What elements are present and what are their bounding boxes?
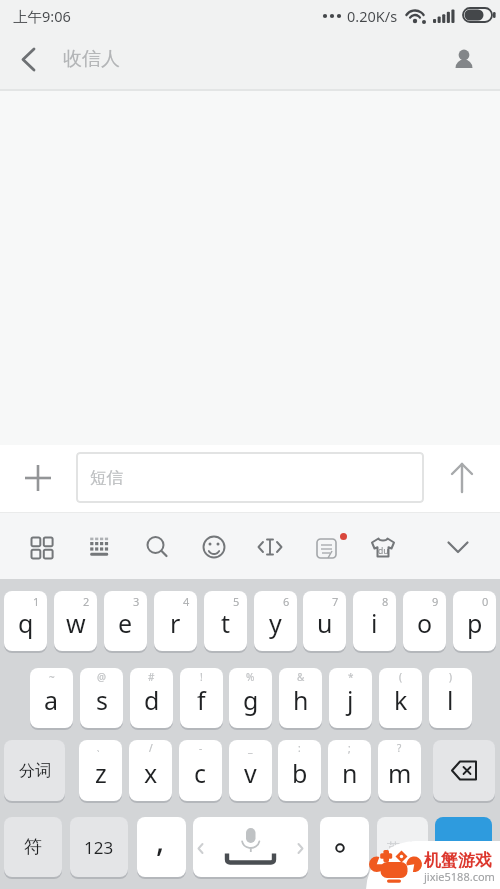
staticText: z	[95, 756, 107, 790]
button[interactable]	[438, 454, 486, 502]
staticText: 、	[96, 741, 106, 754]
staticText: 7	[332, 594, 339, 609]
staticText: ;	[348, 741, 351, 755]
button[interactable]: y	[254, 591, 297, 651]
staticText: m	[388, 756, 412, 790]
button[interactable]: b	[278, 740, 321, 801]
staticText: l	[447, 683, 454, 717]
staticText: h	[293, 683, 309, 717]
staticText: 8	[382, 594, 389, 609]
staticText: e	[118, 606, 133, 640]
staticText: !	[200, 670, 203, 684]
staticText: &	[297, 670, 305, 684]
staticText: i	[371, 606, 378, 640]
staticText: /	[149, 741, 153, 755]
button[interactable]	[193, 817, 308, 877]
button[interactable]	[78, 525, 122, 569]
button[interactable]: q	[4, 591, 47, 651]
staticText: 123	[84, 836, 114, 859]
button[interactable]	[8, 38, 52, 82]
staticText: p	[467, 606, 483, 640]
button[interactable]: t	[204, 591, 247, 651]
button[interactable]	[436, 525, 480, 569]
staticText: j	[347, 683, 354, 717]
button[interactable]: h	[279, 668, 322, 728]
staticText: f	[197, 683, 206, 717]
staticText: *	[348, 670, 354, 684]
button[interactable]: g	[229, 668, 272, 728]
button[interactable]: s	[80, 668, 123, 728]
staticText: s	[96, 683, 108, 717]
button[interactable]: o	[403, 591, 446, 651]
staticText: r	[170, 606, 181, 640]
button[interactable]	[320, 817, 369, 877]
button[interactable]: ,	[137, 817, 186, 877]
staticText: 9	[432, 594, 439, 609]
staticText: a	[44, 683, 59, 717]
button[interactable]: a	[30, 668, 73, 728]
button[interactable]: r	[154, 591, 197, 651]
button[interactable]	[361, 525, 405, 569]
staticText: 0	[482, 594, 489, 609]
staticText: 分词	[19, 761, 51, 781]
button[interactable]: i	[353, 591, 396, 651]
staticText: w	[66, 606, 86, 640]
button[interactable]: z	[79, 740, 122, 801]
button[interactable]: p	[453, 591, 496, 651]
staticText: %	[246, 670, 255, 684]
button[interactable]: f	[180, 668, 223, 728]
staticText: v	[244, 756, 257, 790]
button[interactable]	[135, 525, 179, 569]
button[interactable]: m	[378, 740, 421, 801]
staticText: g	[243, 683, 259, 717]
staticText: x	[144, 756, 158, 790]
button[interactable]: e	[104, 591, 147, 651]
button[interactable]: d	[130, 668, 173, 728]
button[interactable]: 123	[70, 817, 128, 877]
button[interactable]: x	[129, 740, 172, 801]
button[interactable]: l	[429, 668, 472, 728]
staticText: 短信	[90, 467, 123, 488]
button[interactable]: 符	[4, 817, 62, 877]
staticText: :	[298, 741, 301, 755]
button[interactable]: 英/中	[377, 817, 428, 877]
staticText: #	[148, 670, 155, 684]
button[interactable]	[433, 740, 495, 801]
button[interactable]	[441, 38, 485, 82]
button[interactable]: j	[329, 668, 372, 728]
staticText: ~	[49, 670, 55, 684]
staticText: d	[144, 683, 160, 717]
button[interactable]	[20, 525, 64, 569]
button[interactable]	[305, 525, 349, 569]
staticText: ?	[397, 741, 402, 755]
staticText: 英/中	[387, 838, 418, 856]
staticText: 2	[83, 594, 90, 609]
staticText: 上午9:06	[13, 6, 71, 26]
button[interactable]: 短信	[76, 452, 424, 503]
button[interactable]	[248, 525, 292, 569]
button[interactable]	[14, 454, 62, 502]
staticText: 机蟹游戏	[424, 850, 492, 871]
button[interactable]	[192, 525, 236, 569]
button[interactable]	[435, 817, 492, 877]
staticText: 5	[233, 594, 240, 609]
staticText: (	[399, 670, 402, 684]
staticText: 0.20K/s	[347, 6, 398, 26]
staticText: 4	[183, 594, 190, 609]
button[interactable]: c	[179, 740, 222, 801]
staticText: 符	[24, 836, 42, 859]
staticText: 收信人	[63, 47, 120, 71]
staticText: @	[97, 670, 106, 684]
button[interactable]: v	[229, 740, 272, 801]
button[interactable]: n	[328, 740, 371, 801]
staticText: t	[221, 606, 231, 640]
button[interactable]: 分词	[4, 740, 65, 801]
staticText: b	[292, 756, 308, 790]
button[interactable]: k	[379, 668, 422, 728]
button[interactable]: w	[54, 591, 97, 651]
staticText: )	[449, 670, 452, 684]
staticText: du	[378, 545, 389, 557]
staticText: ,	[156, 820, 165, 861]
button[interactable]: u	[303, 591, 346, 651]
staticText: c	[194, 756, 207, 790]
